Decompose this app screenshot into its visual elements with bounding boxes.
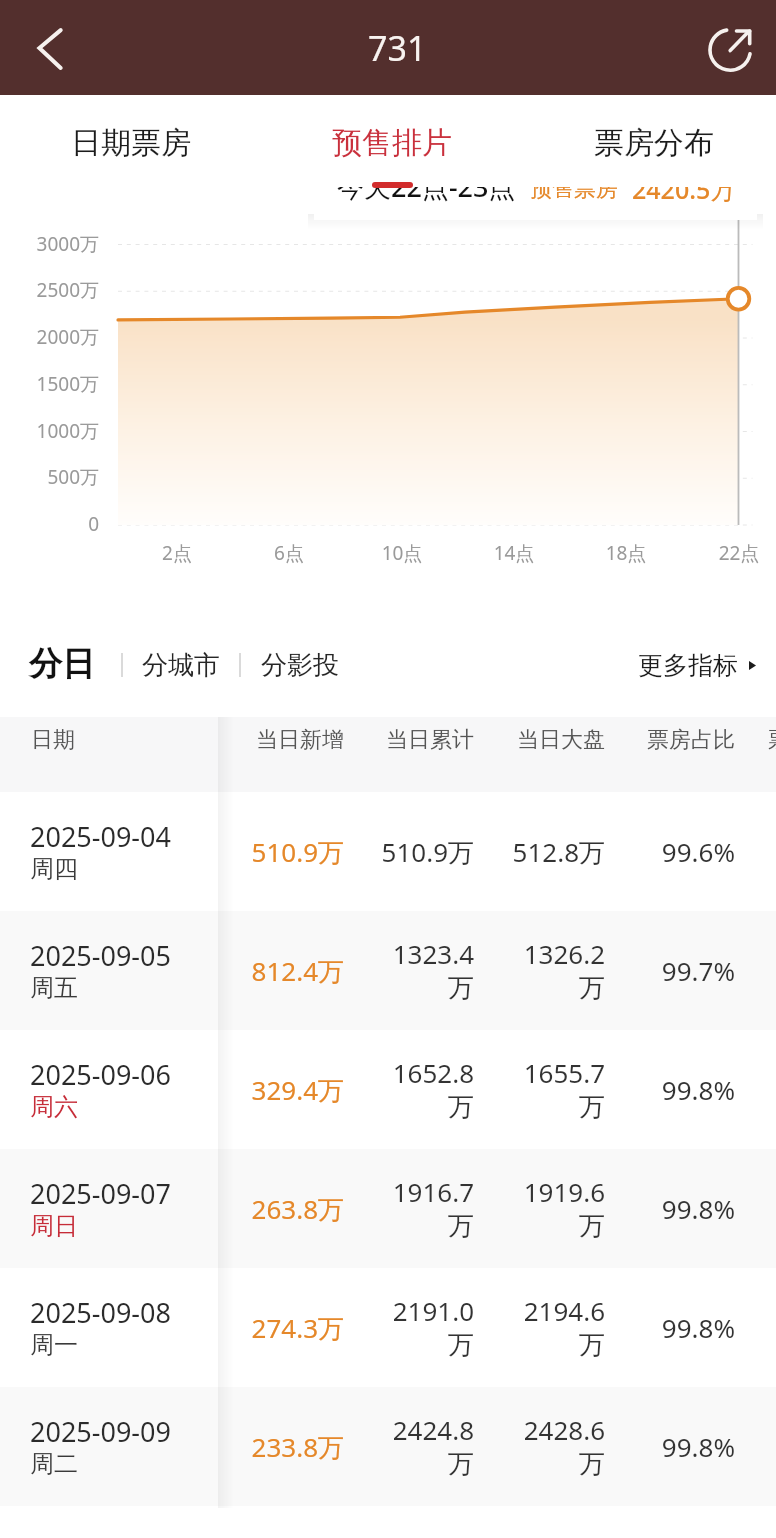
staticText: 2025-09-09 [30,1413,171,1450]
staticText: 99.8% [635,1191,735,1226]
button[interactable]: 2025-09-06 [0,1030,776,1149]
staticText: 99.8% [635,1429,735,1464]
staticText: 329.4万 [244,1072,344,1108]
staticText: 1919.6万 [505,1174,605,1243]
staticText: 22点 [689,540,776,566]
staticText: 2025-09-04 [30,818,171,855]
staticText: 票房分布 [594,124,714,162]
staticText: 周四 [30,854,78,884]
staticText: 14点 [464,540,564,566]
staticText: 周六 [30,1092,78,1122]
staticText: 日期 [31,726,75,754]
staticText: 更多指标 [638,650,738,681]
staticText: 2000万 [0,324,99,350]
staticText: 99.8% [635,1072,735,1107]
staticText: 周五 [30,973,78,1003]
staticText: 510.9万 [374,834,474,870]
staticText: 2191.0万 [374,1293,474,1362]
staticText: 2428.6万 [505,1412,605,1481]
button[interactable]: Back [14,14,82,82]
button[interactable]: 更多指标 [638,650,756,681]
staticText: 周一 [30,1330,78,1360]
button[interactable]: 分城市 [142,649,220,682]
staticText: 233.8万 [244,1429,344,1465]
staticText: 预售排片 [332,124,452,162]
button[interactable]: 2025-09-07 [0,1149,776,1268]
staticText: 1323.4万 [374,936,474,1005]
button[interactable]: 2025-09-05 [0,911,776,1030]
staticText: 6点 [239,540,339,566]
staticText: 263.8万 [244,1191,344,1227]
staticText: 日期票房 [71,124,191,162]
staticText: 10点 [352,540,452,566]
button[interactable]: 票房分布 [525,95,776,187]
staticText: 今天22点-23点 [337,168,516,205]
staticText: 当日新增 [244,726,344,754]
staticText: 预售票房 [530,175,618,203]
staticText: 周日 [30,1211,78,1241]
staticText: 2424.8万 [374,1412,474,1481]
staticText: 0 [0,511,99,537]
staticText: 731 [368,25,427,71]
staticText: 2点 [127,540,227,566]
staticText: 1326.2万 [505,936,605,1005]
staticText: 3000万 [0,231,99,257]
button[interactable]: 2025-09-04 [0,792,776,911]
staticText: 512.8万 [505,834,605,870]
staticText: 2025-09-05 [30,937,171,974]
staticText: 18点 [576,540,676,566]
staticText: 274.3万 [244,1310,344,1346]
staticText: 1000万 [0,418,99,444]
staticText: 1916.7万 [374,1174,474,1243]
button[interactable]: 2025-09-09 [0,1387,776,1506]
button[interactable]: 分日 [29,643,95,685]
staticText: 2194.6万 [505,1293,605,1362]
button[interactable]: 预售排片 [263,95,521,187]
staticText: 99.6% [635,834,735,869]
staticText: 812.4万 [244,953,344,989]
button[interactable]: 2025-09-08 [0,1268,776,1387]
staticText: 1655.7万 [505,1055,605,1124]
staticText: 99.8% [635,1310,735,1345]
staticText: 510.9万 [244,834,344,870]
staticText: 2025-09-07 [30,1175,171,1212]
staticText: 500万 [0,464,99,490]
staticText: 票房占比 [635,726,735,754]
staticText: 周二 [30,1449,78,1479]
staticText: 2025-09-08 [30,1294,171,1331]
staticText: 1652.8万 [374,1055,474,1124]
staticText: 当日大盘 [505,726,605,754]
button[interactable]: Share [696,16,764,84]
staticText: 当日累计 [374,726,474,754]
button[interactable]: 分影投 [261,649,339,682]
staticText: 99.7% [635,953,735,988]
staticText: 1500万 [0,371,99,397]
staticText: 2420.5万 [632,172,736,206]
button[interactable]: 日期票房 [2,95,260,187]
staticText: 票房 [768,726,776,754]
staticText: 2500万 [0,277,99,303]
staticText: 2025-09-06 [30,1056,171,1093]
